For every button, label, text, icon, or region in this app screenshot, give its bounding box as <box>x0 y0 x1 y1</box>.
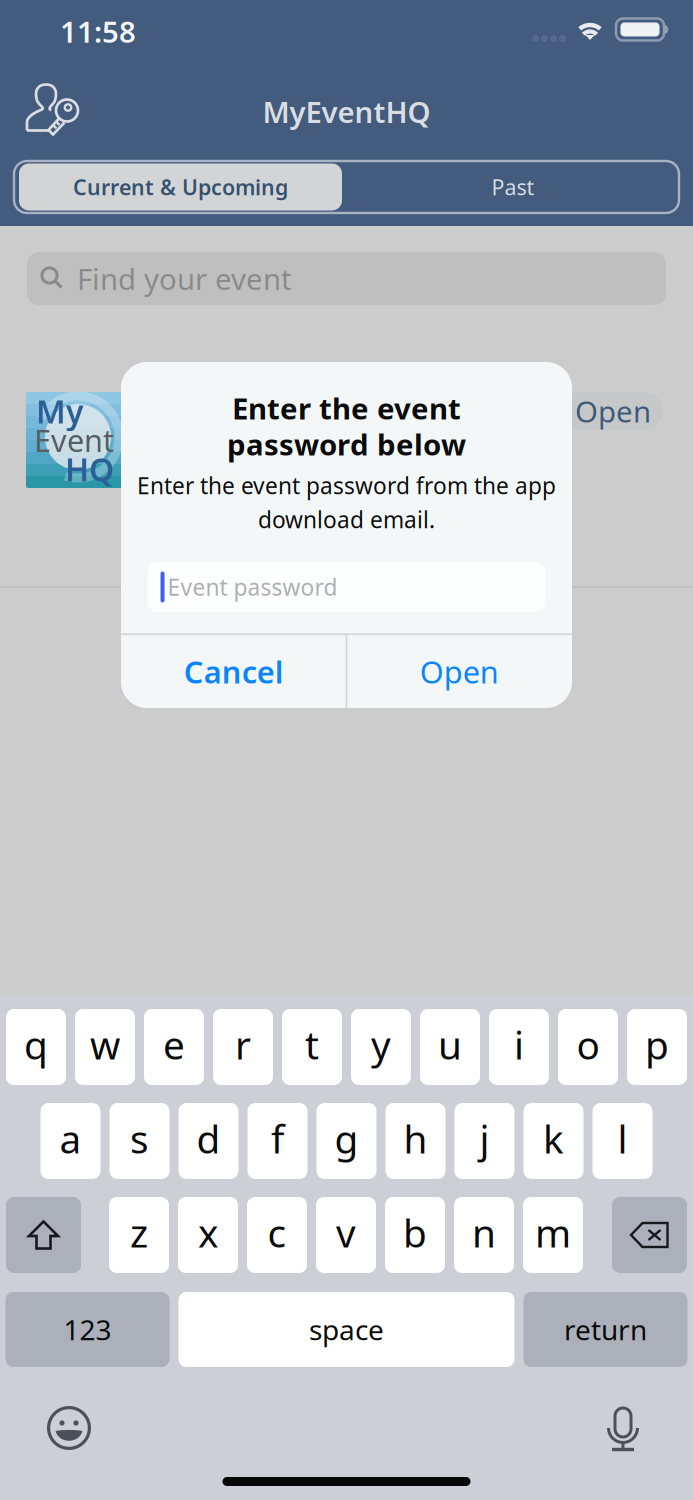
staticText: Event password <box>167 572 337 602</box>
staticText: 123 <box>63 1311 111 1348</box>
staticText: l <box>617 1113 627 1164</box>
staticText: x <box>198 1207 218 1258</box>
staticText: f <box>271 1113 284 1164</box>
button[interactable]: e <box>144 1009 204 1085</box>
staticText: 11:58 <box>60 12 136 51</box>
button[interactable]: Open <box>563 392 663 430</box>
staticText: m <box>535 1207 571 1258</box>
staticText: d <box>196 1113 220 1164</box>
button[interactable]: Dictate <box>607 1403 640 1452</box>
button[interactable]: l <box>592 1103 652 1179</box>
staticText: w <box>90 1019 120 1070</box>
staticText: o <box>576 1019 599 1070</box>
button[interactable]: p <box>627 1009 687 1085</box>
staticText: g <box>334 1113 358 1164</box>
staticText: password below <box>227 424 466 463</box>
staticText: k <box>543 1113 564 1164</box>
staticText: Open <box>420 651 499 692</box>
button[interactable]: Past <box>342 163 674 210</box>
button[interactable]: f <box>247 1103 307 1179</box>
button[interactable]: r <box>213 1009 273 1085</box>
button[interactable]: h <box>385 1103 445 1179</box>
button[interactable]: return <box>523 1292 687 1367</box>
staticText: n <box>472 1207 496 1258</box>
button[interactable]: n <box>454 1197 514 1273</box>
staticText: t <box>305 1019 319 1070</box>
button[interactable]: Account <box>25 82 81 140</box>
staticText: s <box>130 1113 149 1164</box>
staticText: y <box>371 1019 391 1070</box>
staticText: p <box>645 1019 669 1070</box>
button[interactable]: Shift <box>6 1197 81 1273</box>
staticText: Enter the event password from the app <box>137 470 556 500</box>
button[interactable]: j <box>454 1103 514 1179</box>
button[interactable]: a <box>40 1103 100 1179</box>
staticText: h <box>403 1113 427 1164</box>
button[interactable]: Cancel <box>122 635 346 708</box>
staticText: u <box>438 1019 462 1070</box>
button[interactable]: u <box>420 1009 480 1085</box>
staticText: download email. <box>258 504 435 534</box>
staticText: Open <box>575 391 651 430</box>
staticText: q <box>24 1019 48 1070</box>
staticText: r <box>235 1019 251 1070</box>
staticText: z <box>130 1207 148 1258</box>
staticText: return <box>564 1311 647 1348</box>
button[interactable]: x <box>178 1197 238 1273</box>
button[interactable]: b <box>385 1197 445 1273</box>
button[interactable]: z <box>109 1197 169 1273</box>
staticText: a <box>59 1113 81 1164</box>
staticText: Current & Upcoming <box>73 173 288 201</box>
button[interactable]: space <box>178 1292 514 1367</box>
button[interactable]: m <box>523 1197 583 1273</box>
staticText: j <box>479 1113 489 1164</box>
button[interactable]: Current & Upcoming <box>19 163 342 210</box>
staticText: MyEventHQ <box>262 92 430 131</box>
button[interactable]: v <box>316 1197 376 1273</box>
button[interactable]: k <box>523 1103 583 1179</box>
staticText: space <box>309 1311 384 1348</box>
button[interactable]: g <box>316 1103 376 1179</box>
button[interactable]: s <box>109 1103 169 1179</box>
button[interactable]: Delete <box>612 1197 687 1273</box>
staticText: Find your event <box>77 259 292 298</box>
staticText: Event <box>34 420 114 460</box>
button[interactable]: Open <box>347 635 571 708</box>
staticText: My <box>36 390 84 432</box>
staticText: Cancel <box>184 651 284 692</box>
staticText: i <box>514 1019 524 1070</box>
button[interactable]: d <box>178 1103 238 1179</box>
staticText: HQ <box>65 448 114 490</box>
staticText: Past <box>491 173 534 201</box>
button[interactable]: w <box>75 1009 135 1085</box>
button[interactable]: y <box>351 1009 411 1085</box>
button[interactable]: q <box>6 1009 66 1085</box>
staticText: e <box>163 1019 185 1070</box>
button[interactable]: 123 <box>5 1292 169 1367</box>
button[interactable]: o <box>558 1009 618 1085</box>
button[interactable]: Emoji <box>47 1403 91 1450</box>
staticText: c <box>267 1207 286 1258</box>
button[interactable]: i <box>489 1009 549 1085</box>
button[interactable]: t <box>282 1009 342 1085</box>
button[interactable]: c <box>247 1197 307 1273</box>
staticText: b <box>403 1207 427 1258</box>
staticText: v <box>336 1207 356 1258</box>
staticText: Enter the event <box>232 388 461 427</box>
